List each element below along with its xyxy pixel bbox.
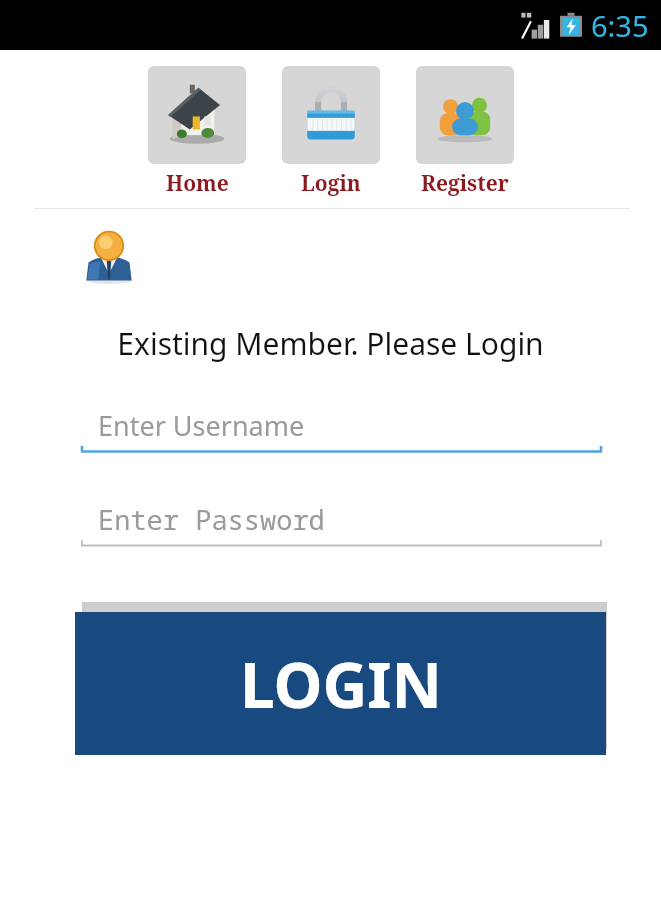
staticText: Home <box>166 169 229 198</box>
button[interactable]: Register <box>416 66 514 198</box>
staticText: LOGIN <box>240 642 442 726</box>
staticText: Existing Member. Please Login <box>0 323 661 364</box>
button[interactable]: LOGIN <box>75 612 606 755</box>
button[interactable]: Enter Password <box>81 496 602 552</box>
staticText: Enter Username <box>98 407 305 444</box>
button[interactable]: Enter Username <box>81 402 602 458</box>
staticText: Register <box>421 169 509 198</box>
staticText: Enter Password <box>98 501 325 538</box>
staticText: 6:35 <box>591 6 649 45</box>
button[interactable]: Login <box>282 66 380 198</box>
staticText: Login <box>301 169 361 198</box>
button[interactable]: Home <box>148 66 246 198</box>
